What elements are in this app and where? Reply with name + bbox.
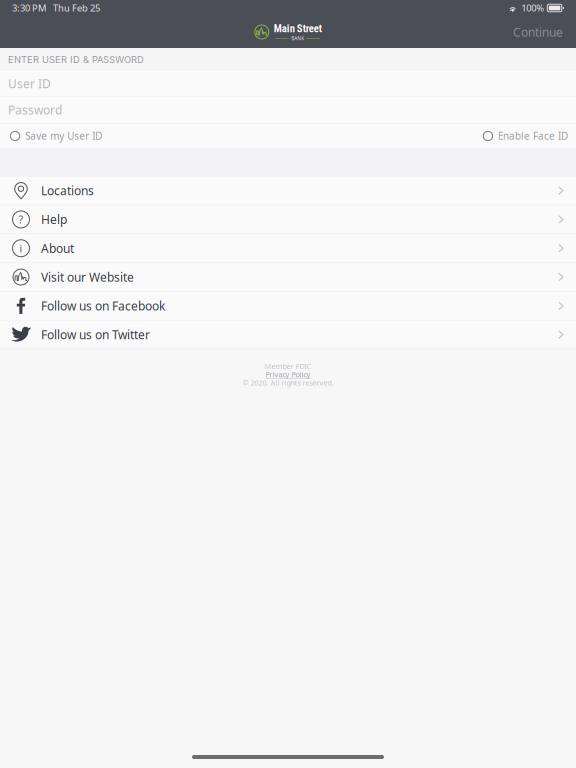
staticText: 100%	[521, 2, 544, 14]
staticText: 3:30 PM	[12, 2, 46, 14]
staticText: Locations	[41, 182, 94, 199]
staticText: Continue	[513, 24, 563, 40]
button[interactable]: Visit our Website	[0, 263, 576, 292]
button[interactable]: i	[0, 234, 576, 263]
button[interactable]: Continue	[513, 24, 576, 40]
button[interactable]: Locations	[0, 176, 576, 205]
staticText: Follow us on Twitter	[41, 326, 150, 343]
button[interactable]: Privacy Policy	[265, 369, 310, 379]
staticText: Thu Feb 25	[53, 2, 100, 14]
staticText: About	[41, 240, 74, 256]
button[interactable]: Follow us on Facebook	[0, 292, 576, 320]
staticText: Help	[41, 211, 67, 228]
staticText: Main Street	[274, 22, 322, 35]
staticText: Privacy Policy	[265, 369, 310, 379]
button[interactable]: Enable Face ID	[483, 129, 576, 143]
button[interactable]: Follow us on Twitter	[0, 320, 576, 349]
staticText: Save my User ID	[25, 129, 102, 143]
staticText: ?	[18, 212, 23, 227]
staticText: Member FDIC	[264, 361, 311, 371]
staticText: © 2020. All rights reserved.	[242, 378, 333, 387]
staticText: Enable Face ID	[498, 129, 568, 143]
staticText: Visit our Website	[41, 269, 134, 285]
button[interactable]: ?	[0, 205, 576, 234]
staticText: BANK	[291, 35, 304, 42]
staticText: Password	[8, 102, 62, 118]
button[interactable]: Save my User ID	[0, 129, 102, 143]
staticText: ENTER USER ID & PASSWORD	[8, 54, 144, 65]
staticText: i	[19, 241, 22, 255]
staticText: User ID	[8, 75, 51, 92]
staticText: Follow us on Facebook	[41, 298, 165, 314]
